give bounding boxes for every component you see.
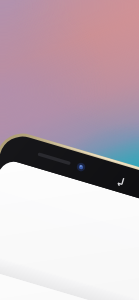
button[interactable]: Phone showing social composer over gradi…	[0, 0, 139, 300]
